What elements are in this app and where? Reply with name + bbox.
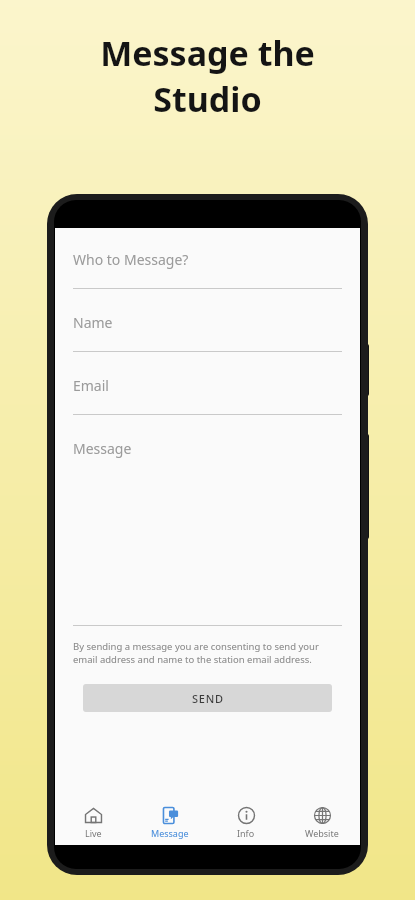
staticText: Info xyxy=(237,827,255,839)
staticText: Studio xyxy=(153,76,262,122)
staticText: SEND xyxy=(192,691,224,706)
button[interactable]: Website xyxy=(284,799,360,845)
staticText: Message xyxy=(151,827,189,839)
staticText: Message xyxy=(73,439,132,458)
button[interactable]: Info xyxy=(208,799,284,845)
button[interactable]: Message xyxy=(132,799,208,845)
button[interactable]: Live xyxy=(55,799,132,845)
staticText: Live xyxy=(85,827,102,839)
staticText: Message the xyxy=(100,30,315,76)
staticText: Email xyxy=(73,376,109,395)
staticText: Name xyxy=(73,313,113,332)
button[interactable]: SEND xyxy=(83,684,332,712)
staticText: Who to Message? xyxy=(73,250,189,269)
staticText: By sending a message you are consenting … xyxy=(73,640,342,666)
staticText: Website xyxy=(305,827,339,839)
